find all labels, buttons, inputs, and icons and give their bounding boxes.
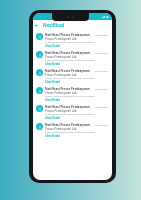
button[interactable]: Notifikasi Proses Pembayaran <box>33 121 112 139</box>
staticText: Notifikasi Proses Pembayaran <box>45 123 90 127</box>
staticText: Notifikasi Proses Pembayaran <box>45 51 90 55</box>
button[interactable]: Notifikasi Proses Pembayaran <box>33 67 112 85</box>
button[interactable]: Notifikasi Proses Pembayaran <box>33 85 112 103</box>
staticText: Notifikasi <box>43 22 65 28</box>
staticText: Proses Pembayaran Lab <box>45 127 77 131</box>
staticText: Lihat Detail <box>45 62 60 66</box>
staticText: Sukses lorem ipsum dolor sit amet consec… <box>45 113 95 116</box>
staticText: Sukses lorem ipsum dolor sit amet consec… <box>45 95 95 98</box>
staticText: Notifikasi Proses Pembayaran <box>45 105 90 109</box>
staticText: Proses Pembayaran Lab <box>45 37 77 41</box>
staticText: Lihat Detail <box>45 116 60 120</box>
staticText: Proses Pembayaran Lab <box>45 55 77 59</box>
staticText: Proses Pembayaran Lab <box>45 109 77 113</box>
staticText: Notifikasi Proses Pembayaran <box>45 87 90 91</box>
staticText: Sukses lorem ipsum dolor sit amet consec… <box>45 59 95 62</box>
staticText: Proses Pembayaran Lab <box>45 73 77 77</box>
staticText: Sukses lorem ipsum dolor sit amet consec… <box>45 41 95 44</box>
button[interactable]: Notifikasi Proses Pembayaran <box>33 49 112 67</box>
staticText: 02/03/2021 <box>95 51 108 54</box>
staticText: 02/03/2021 <box>95 33 108 36</box>
staticText: 02/03/2021 <box>95 105 108 108</box>
staticText: Proses Pembayaran Lab <box>45 91 77 95</box>
staticText: Sukses lorem ipsum dolor sit amet consec… <box>45 131 95 134</box>
staticText: Notifikasi Proses Pembayaran <box>45 69 90 73</box>
staticText: Lihat Detail <box>45 44 60 48</box>
staticText: Sukses lorem ipsum dolor sit amet consec… <box>45 77 95 80</box>
button[interactable]: Notifikasi Proses Pembayaran <box>33 31 112 49</box>
staticText: 02/03/2021 <box>95 87 108 90</box>
button[interactable]: Notifikasi Proses Pembayaran <box>33 103 112 121</box>
staticText: Notifikasi Proses Pembayaran <box>45 33 90 37</box>
staticText: Lihat Detail <box>45 80 60 84</box>
staticText: Lihat Detail <box>45 98 60 102</box>
staticText: 02/03/2021 <box>95 123 108 126</box>
staticText: Lihat Detail <box>45 134 60 138</box>
button[interactable]: Back <box>33 22 40 29</box>
staticText: 02/03/2021 <box>95 69 108 72</box>
